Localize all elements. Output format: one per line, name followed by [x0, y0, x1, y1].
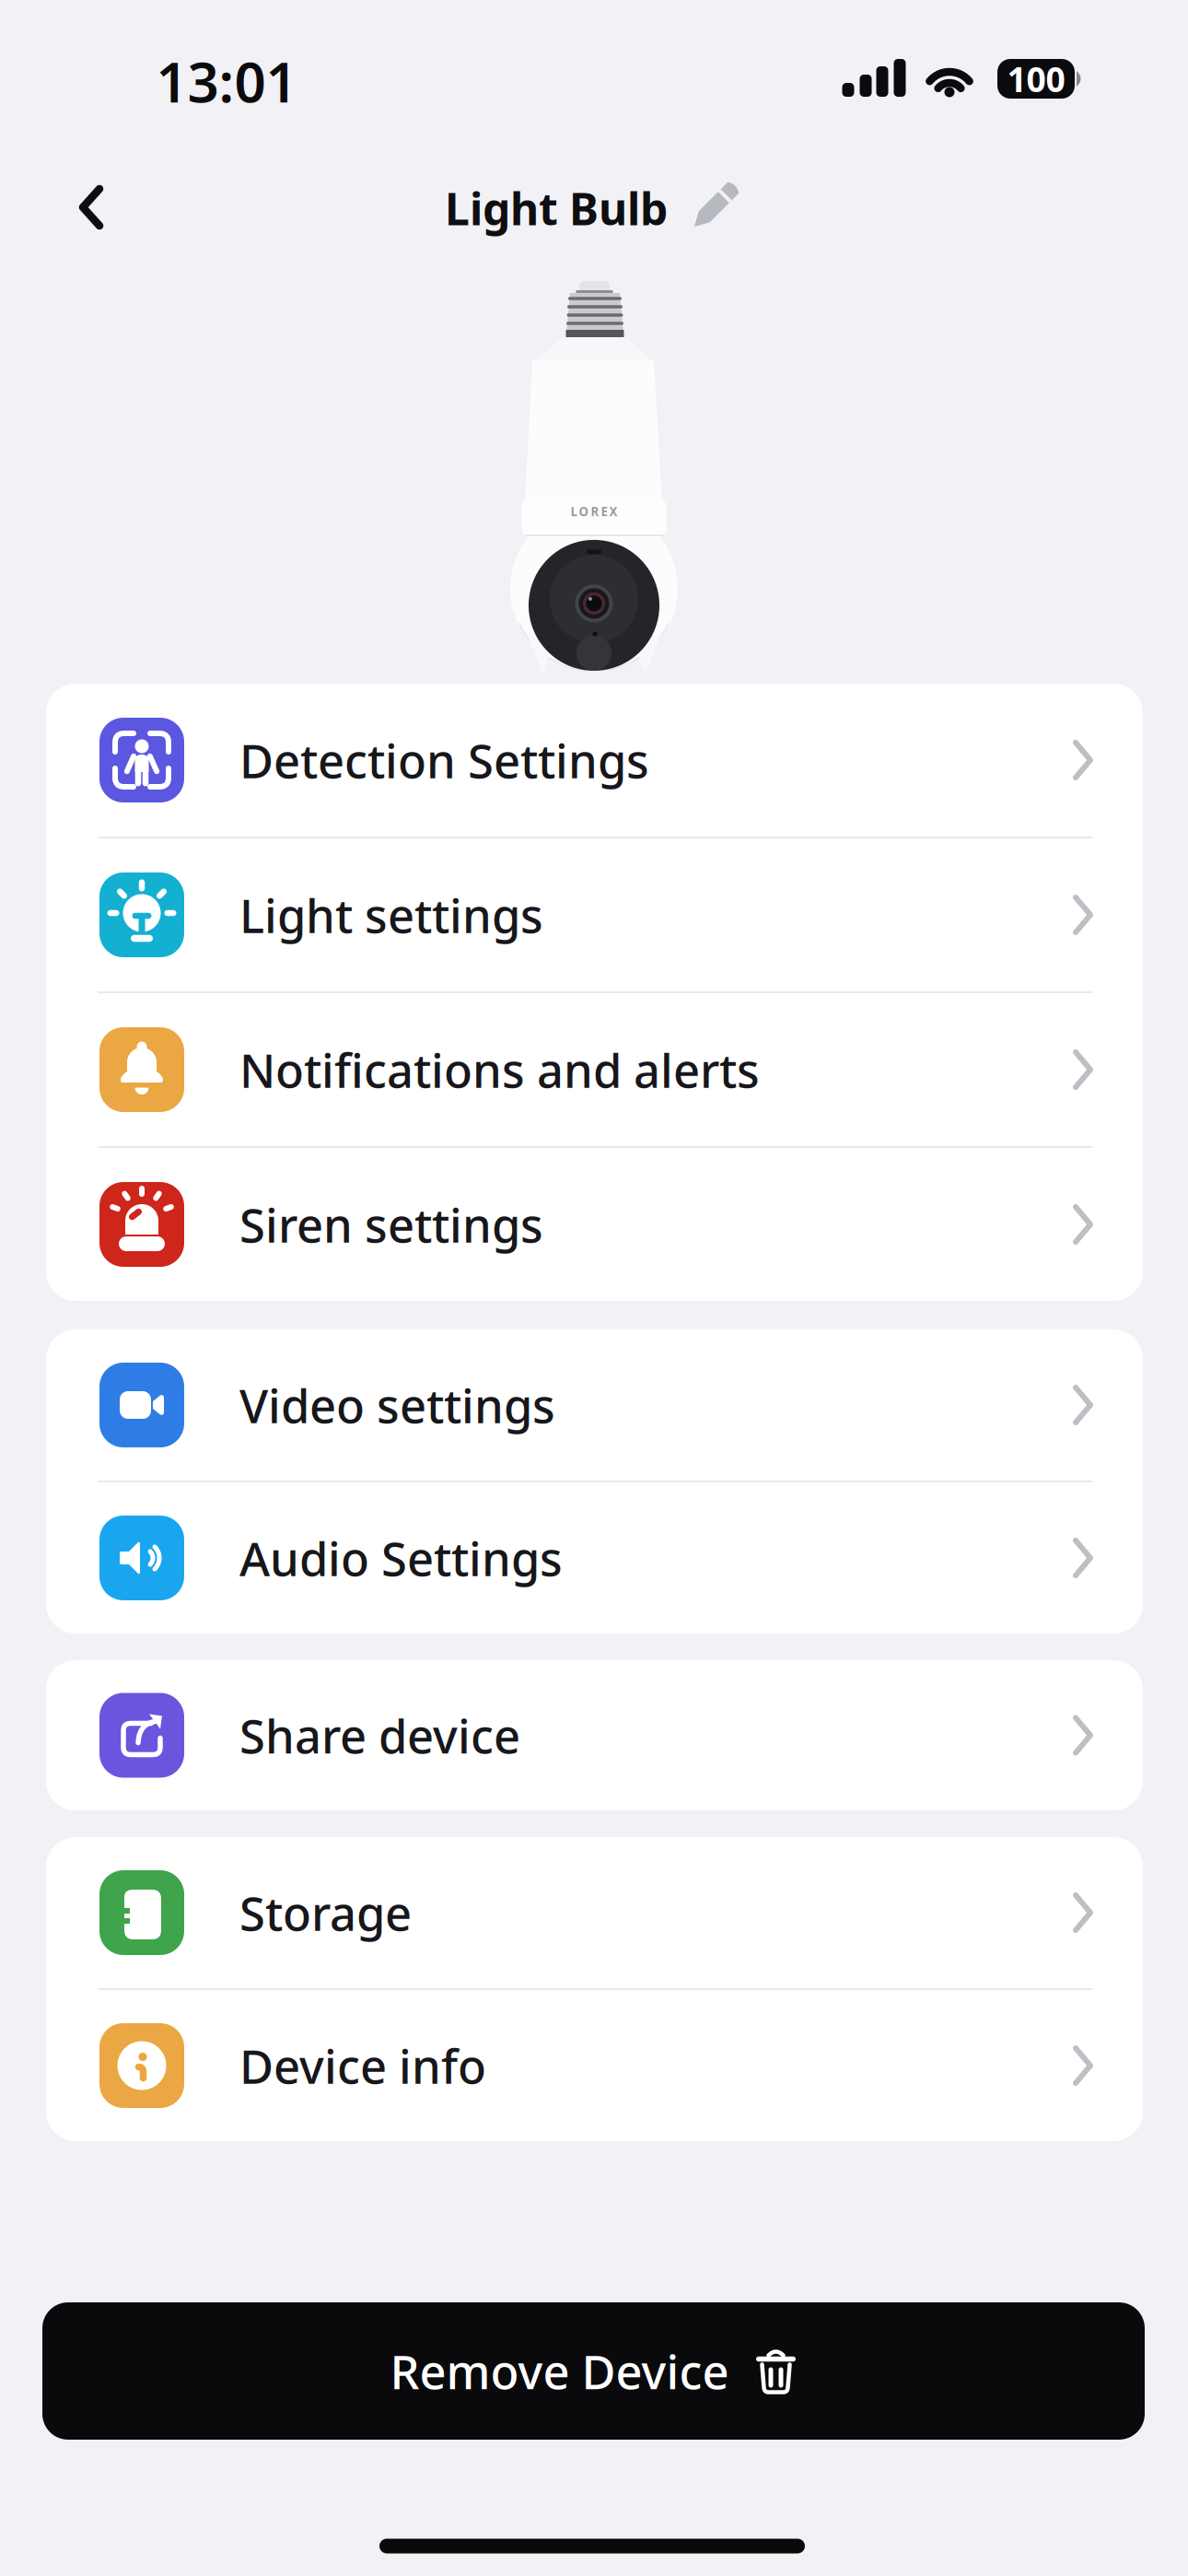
- button[interactable]: Light settings: [46, 838, 1143, 991]
- button[interactable]: Edit name: [0, 0, 1188, 2576]
- button[interactable]: Audio Settings: [46, 1482, 1143, 1633]
- button[interactable]: Device info: [46, 1990, 1143, 2141]
- staticText: Remove Device: [390, 2340, 729, 2402]
- button[interactable]: Notifications and alerts: [46, 993, 1143, 1146]
- button[interactable]: Video settings: [46, 1329, 1143, 1481]
- staticText: Storage: [239, 1882, 412, 1944]
- staticText: Siren settings: [239, 1193, 543, 1255]
- staticText: Light settings: [239, 884, 543, 946]
- button[interactable]: Share device: [46, 1660, 1143, 1810]
- staticText: Notifications and alerts: [239, 1039, 760, 1101]
- staticText: Light Bulb: [445, 179, 668, 238]
- staticText: 100: [1007, 56, 1065, 102]
- staticText: Device info: [239, 2035, 486, 2097]
- staticText: LOREX: [571, 503, 617, 519]
- button[interactable]: Storage: [46, 1837, 1143, 1988]
- staticText: Video settings: [239, 1374, 555, 1436]
- button[interactable]: Remove Device: [42, 2302, 1145, 2440]
- staticText: Audio Settings: [239, 1527, 563, 1589]
- button[interactable]: Detection Settings: [46, 684, 1143, 837]
- button[interactable]: Back: [80, 186, 104, 228]
- staticText: Share device: [239, 1704, 520, 1766]
- staticText: 13:01: [156, 44, 297, 118]
- staticText: Detection Settings: [239, 729, 649, 791]
- button[interactable]: Siren settings: [46, 1148, 1143, 1301]
